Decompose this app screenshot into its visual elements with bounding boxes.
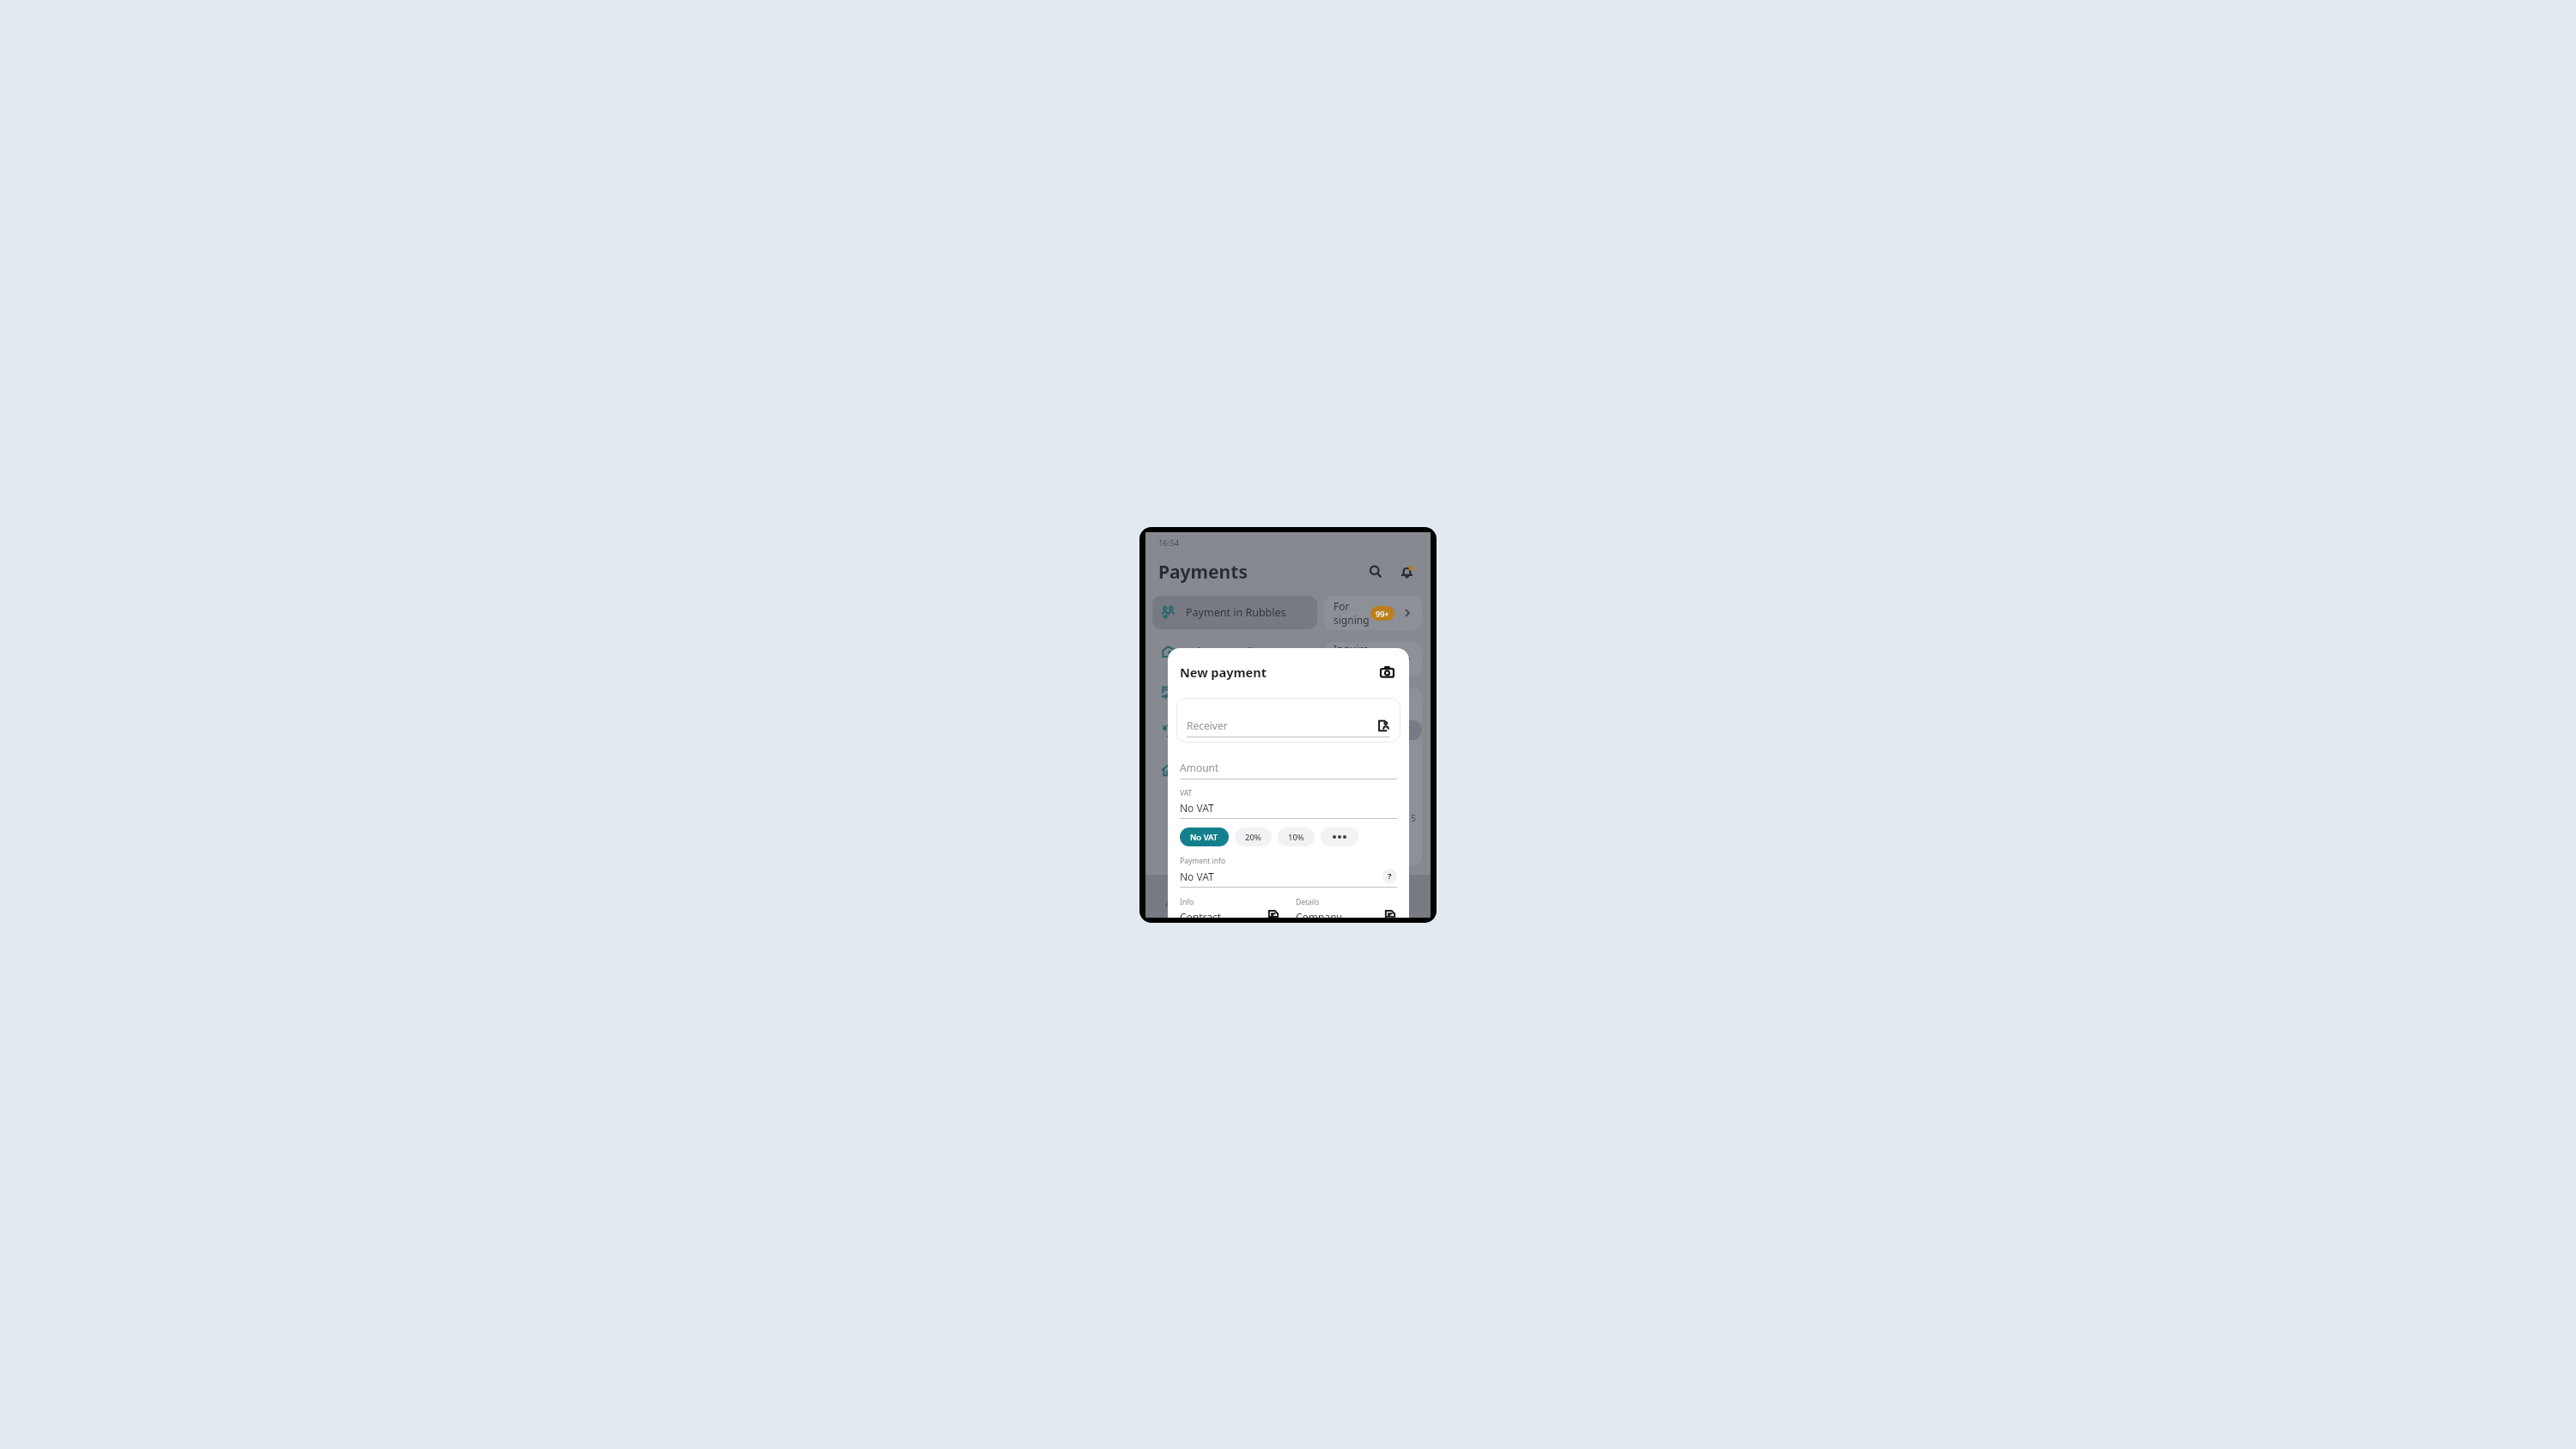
button[interactable]: More VAT options (1321, 828, 1358, 846)
button[interactable]: Sale of currency (1152, 754, 1317, 787)
staticText: No VAT (1180, 870, 1382, 883)
staticText: VAT (1180, 788, 1193, 798)
staticText: Details (1296, 897, 1320, 907)
staticText: Payment in Rubbles (1186, 605, 1286, 620)
button[interactable]: Payments (1217, 875, 1288, 918)
staticText: No VAT (1190, 832, 1218, 843)
staticText: ? (1388, 870, 1392, 882)
staticText: No VAT (1180, 801, 1397, 815)
staticText: №32 of 08/07/2015 (1335, 812, 1417, 824)
button[interactable]: Salary Payroll (1152, 635, 1317, 669)
button[interactable]: Receiver (1176, 698, 1400, 743)
button[interactable]: Card to Card (1152, 675, 1317, 708)
staticText: New payment (1180, 664, 1376, 681)
staticText: Accounts (1165, 900, 1197, 910)
button[interactable]: No VAT (1180, 828, 1229, 846)
staticText: Contract (1180, 910, 1267, 918)
staticText: Amount (1180, 761, 1219, 774)
button[interactable]: Payment in Rubbles (1152, 596, 1317, 629)
staticText: Info (1180, 897, 1194, 907)
button[interactable]: Inquire of details (1324, 642, 1422, 676)
button[interactable]: Scan with camera (1376, 662, 1397, 682)
button[interactable]: Select contract (1267, 910, 1280, 918)
staticText: Card to Card (1186, 684, 1249, 699)
button[interactable]: All (1335, 720, 1368, 740)
button[interactable]: Complete (1375, 720, 1422, 740)
staticText: Payment info (1180, 856, 1226, 866)
staticText: 99+ (1376, 609, 1389, 619)
button[interactable]: 20% (1235, 828, 1272, 846)
staticText: Today (1335, 698, 1364, 712)
staticText: Receiver (1187, 718, 1377, 732)
staticText: Sale of currency (1186, 763, 1267, 778)
button[interactable]: Chat (1359, 875, 1431, 918)
staticText: Buy of currency (1186, 724, 1265, 738)
button[interactable]: Notifications (1395, 561, 1418, 583)
button[interactable]: 10% (1278, 828, 1315, 846)
staticText: 10% (1288, 832, 1304, 843)
button[interactable]: For signing (1324, 596, 1422, 630)
button[interactable]: Search (1364, 561, 1387, 583)
staticText: Company (1296, 910, 1383, 918)
staticText: 16:54 (1158, 537, 1180, 549)
staticText: For signing (1334, 599, 1370, 627)
button[interactable]: Buy of currency (1152, 714, 1317, 748)
staticText: Inquire of details (1334, 642, 1374, 676)
staticText: More (1315, 900, 1333, 910)
button[interactable]: Select company (1383, 910, 1397, 918)
button[interactable]: Help (1382, 869, 1397, 883)
staticText: Complete (1386, 720, 1411, 740)
staticText: 20% (1245, 832, 1261, 843)
button[interactable]: More (1288, 875, 1359, 918)
staticText: Payments (1158, 560, 1364, 585)
staticText: Salary Payroll (1186, 645, 1254, 659)
button[interactable]: Accounts (1145, 875, 1217, 918)
